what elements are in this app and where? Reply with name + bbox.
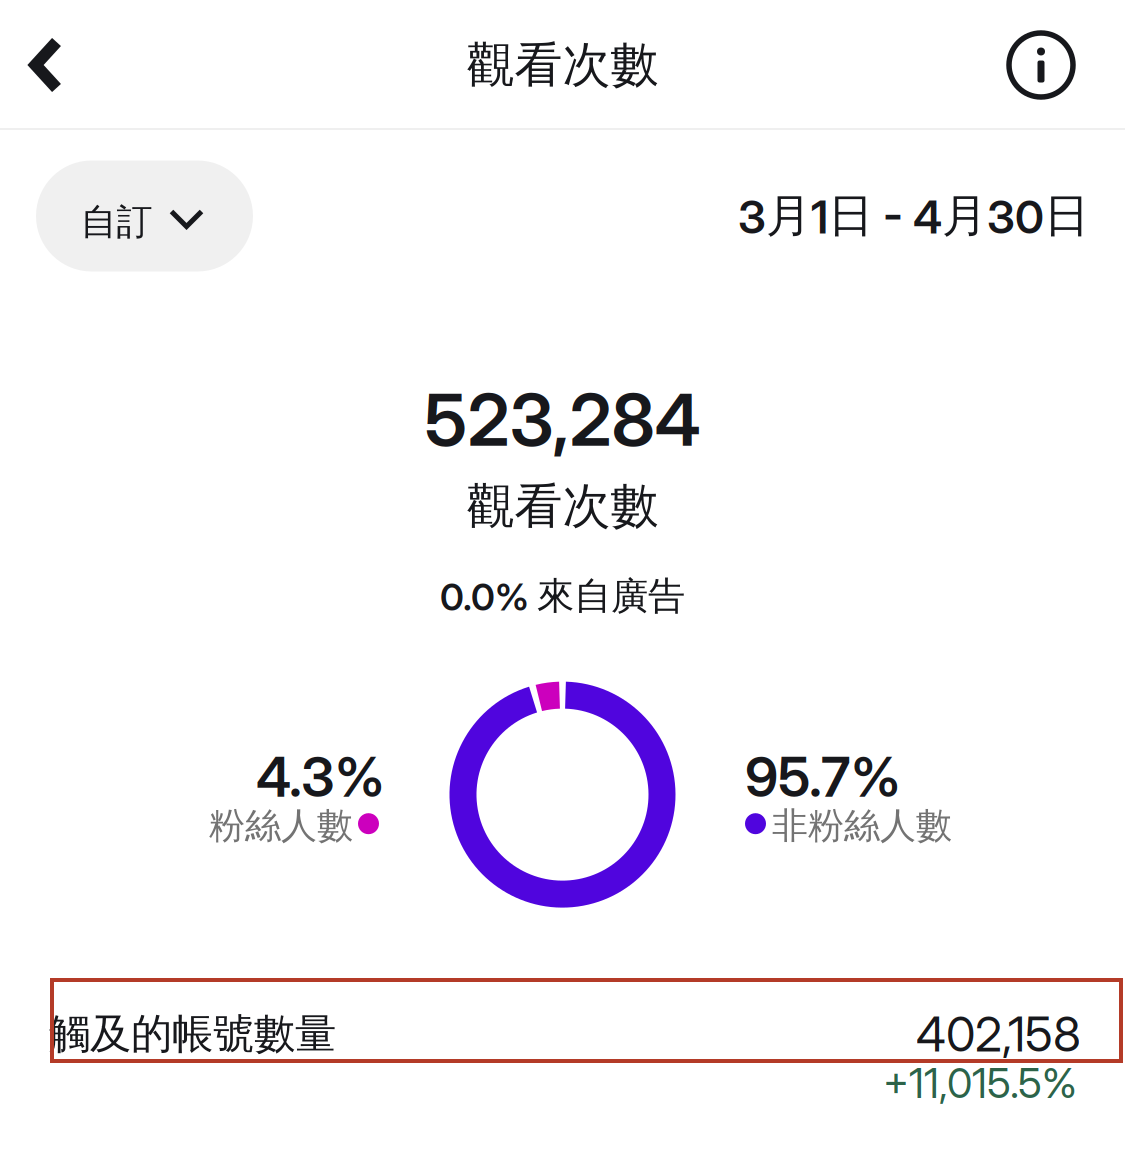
staticText: 402,158 bbox=[916, 1005, 1081, 1063]
staticText: 95.7% bbox=[745, 744, 901, 810]
staticText: 粉絲人數 bbox=[209, 803, 353, 848]
staticText: 自訂 bbox=[80, 199, 152, 245]
staticText: 0.0% 來自廣告 bbox=[440, 573, 685, 620]
staticText: 觀看次數 bbox=[466, 476, 658, 537]
staticText: 3月1日 - 4月30日 bbox=[738, 187, 1089, 244]
staticText: 4.3% bbox=[256, 744, 385, 810]
button[interactable]: 觸及的帳號數量 bbox=[0, 980, 1125, 1063]
staticText: +11,015.5% bbox=[883, 1058, 1077, 1108]
button[interactable]: 資訊 bbox=[995, 13, 1087, 117]
button[interactable]: 自訂 bbox=[36, 160, 253, 271]
staticText: 523,284 bbox=[424, 376, 700, 463]
staticText: 非粉絲人數 bbox=[772, 803, 952, 848]
staticText: 觸及的帳號數量 bbox=[49, 1008, 336, 1060]
staticText: 觀看次數 bbox=[466, 35, 658, 95]
button[interactable]: 返回 bbox=[0, 13, 87, 117]
